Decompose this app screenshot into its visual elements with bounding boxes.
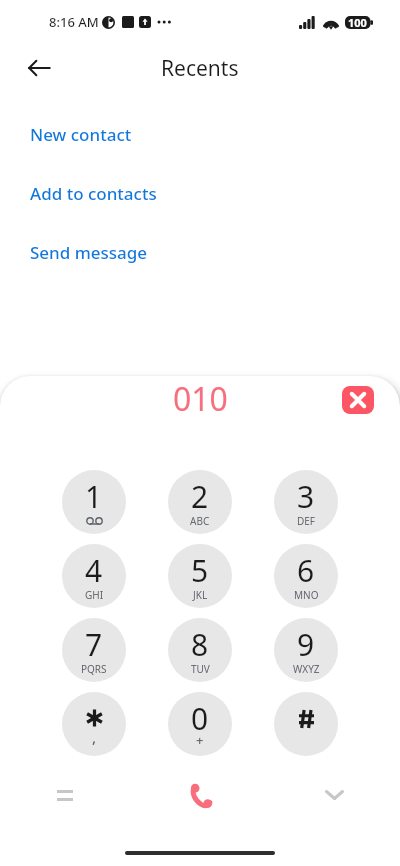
button[interactable]: Back xyxy=(22,51,56,85)
button[interactable]: Send message xyxy=(0,223,400,282)
staticText: 6 xyxy=(297,550,315,591)
staticText: 8 xyxy=(191,624,209,665)
staticText: 1 xyxy=(85,476,103,517)
button[interactable]: Call xyxy=(177,771,225,819)
staticText: Recents xyxy=(161,54,239,83)
button[interactable]: Delete xyxy=(342,386,374,414)
button[interactable] xyxy=(274,692,338,756)
staticText: New contact xyxy=(30,123,132,146)
button[interactable]: Hide keypad xyxy=(310,771,358,819)
button[interactable]: 8 xyxy=(168,618,232,682)
button[interactable]: 2 xyxy=(168,470,232,534)
button[interactable]: 4 xyxy=(62,544,126,608)
button[interactable]: 1 xyxy=(62,470,126,534)
staticText: TUV xyxy=(191,662,210,676)
staticText: 4 xyxy=(85,550,103,591)
staticText: 8:16 AM xyxy=(49,13,99,31)
staticText: MNO xyxy=(294,588,319,602)
staticText: 2 xyxy=(191,476,209,517)
staticText: 5 xyxy=(191,550,209,591)
button[interactable]: 9 xyxy=(274,618,338,682)
staticText: + xyxy=(196,731,204,749)
staticText: 3 xyxy=(297,476,315,517)
button[interactable]: Add to contacts xyxy=(0,164,400,223)
staticText: 9 xyxy=(297,624,315,665)
button[interactable]: New contact xyxy=(0,105,400,164)
staticText: 7 xyxy=(85,624,103,665)
staticText: 010 xyxy=(173,377,228,421)
button[interactable]: 5 xyxy=(168,544,232,608)
button[interactable]: 3 xyxy=(274,470,338,534)
staticText: WXYZ xyxy=(293,662,320,676)
staticText: ABC xyxy=(190,514,210,528)
staticText: , xyxy=(92,727,97,747)
staticText: DEF xyxy=(297,514,316,528)
button[interactable]: , xyxy=(62,692,126,756)
button[interactable]: 0 xyxy=(168,692,232,756)
staticText: 0 xyxy=(191,698,209,739)
button[interactable]: More options xyxy=(43,771,91,819)
button[interactable]: 7 xyxy=(62,618,126,682)
staticText: GHI xyxy=(85,588,104,602)
staticText: Send message xyxy=(30,241,148,264)
staticText: JKL xyxy=(193,588,208,602)
staticText: 100 xyxy=(348,15,367,30)
staticText: Add to contacts xyxy=(30,182,157,205)
staticText: PQRS xyxy=(81,662,107,676)
button[interactable]: 6 xyxy=(274,544,338,608)
